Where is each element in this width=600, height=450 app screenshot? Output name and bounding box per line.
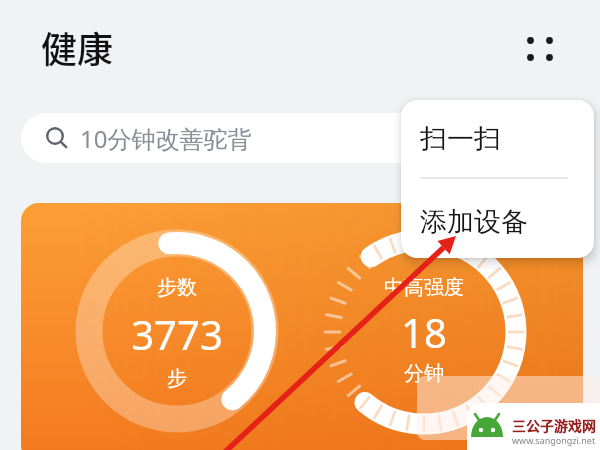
- staticText: www.sangongzi.net: [512, 434, 596, 446]
- button[interactable]: 添加设备: [401, 179, 594, 258]
- staticText: 中高强度: [384, 275, 464, 300]
- staticText: 分钟: [404, 361, 444, 386]
- staticText: 扫一扫: [420, 122, 501, 156]
- staticText: 添加设备: [420, 205, 528, 239]
- button[interactable]: 扫一扫: [401, 100, 594, 177]
- staticText: 10分钟改善驼背: [80, 122, 252, 155]
- staticText: 3773: [131, 307, 223, 359]
- staticText: 健康: [41, 21, 114, 73]
- button[interactable]: 10分钟改善驼背: [21, 113, 580, 163]
- button[interactable]: [518, 27, 562, 71]
- staticText: 三公子游戏网: [512, 415, 596, 435]
- staticText: 步: [167, 366, 187, 391]
- staticText: 18: [401, 305, 447, 357]
- staticText: 步数: [157, 275, 197, 300]
- button[interactable]: [21, 203, 583, 450]
